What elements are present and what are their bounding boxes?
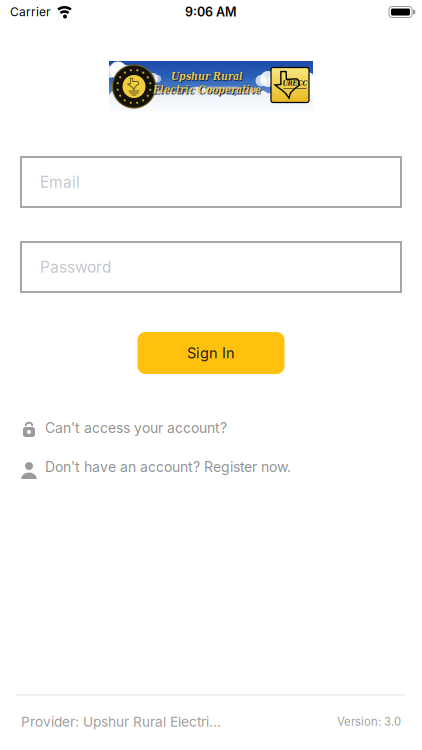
staticText: 9:06 AM (185, 4, 237, 19)
staticText: Carrier (10, 5, 51, 19)
staticText: Upshur Rural (172, 71, 244, 84)
staticText: Sign In (187, 344, 235, 362)
staticText: Provider: Upshur Rural Electri… (21, 713, 221, 730)
staticText: Don't have an account? Register now. (45, 458, 291, 475)
button[interactable]: Can't access your account? (0, 419, 422, 437)
staticText: URECC (282, 79, 307, 87)
staticText: Version: 3.0 (337, 715, 401, 729)
staticText: Electric Cooperative (153, 83, 261, 96)
button[interactable]: Sign In (137, 332, 284, 374)
staticText: Email (40, 173, 80, 191)
button[interactable]: Don't have an account? Register now. (0, 458, 422, 476)
staticText: Password (40, 258, 111, 276)
staticText: Can't access your account? (45, 419, 227, 436)
staticText: Electric Cooperative (154, 85, 262, 97)
staticText: Upshur Rural (171, 70, 243, 82)
